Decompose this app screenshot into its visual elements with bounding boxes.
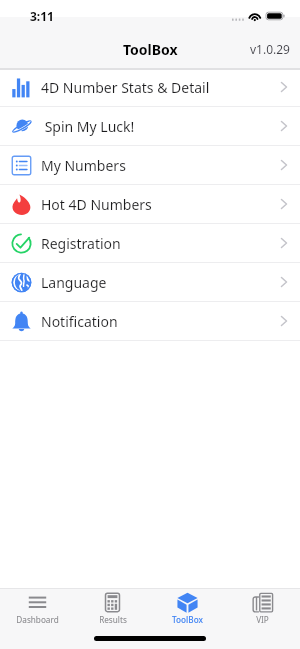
button[interactable]: Notification (0, 302, 300, 341)
staticText: 3:11 (30, 8, 54, 24)
button[interactable]: Results (75, 589, 150, 625)
staticText: Language (41, 273, 107, 292)
staticText: Hot 4D Numbers (41, 195, 152, 214)
staticText: Notification (41, 312, 118, 331)
button[interactable]: Hot 4D Numbers (0, 185, 300, 224)
staticText: Spin My Luck! (41, 117, 135, 136)
staticText: My Numbers (41, 156, 126, 175)
button[interactable]: Language (0, 263, 300, 302)
staticText: ToolBox (172, 614, 203, 625)
button[interactable]: Spin My Luck! (0, 107, 300, 146)
staticText: 4D Number Stats & Detail (41, 78, 210, 97)
staticText: v1.0.29 (250, 41, 290, 57)
button[interactable]: Registration (0, 224, 300, 263)
button[interactable]: ToolBox (150, 589, 225, 625)
staticText: Results (99, 614, 127, 625)
staticText: Registration (41, 234, 121, 253)
button[interactable]: My Numbers (0, 146, 300, 185)
button[interactable]: VIP (225, 589, 300, 625)
button[interactable]: 4D Number Stats & Detail (0, 68, 300, 107)
staticText: VIP (256, 614, 269, 625)
button[interactable]: Dashboard (0, 589, 75, 625)
staticText: ToolBox (123, 40, 178, 59)
staticText: Dashboard (16, 614, 59, 625)
